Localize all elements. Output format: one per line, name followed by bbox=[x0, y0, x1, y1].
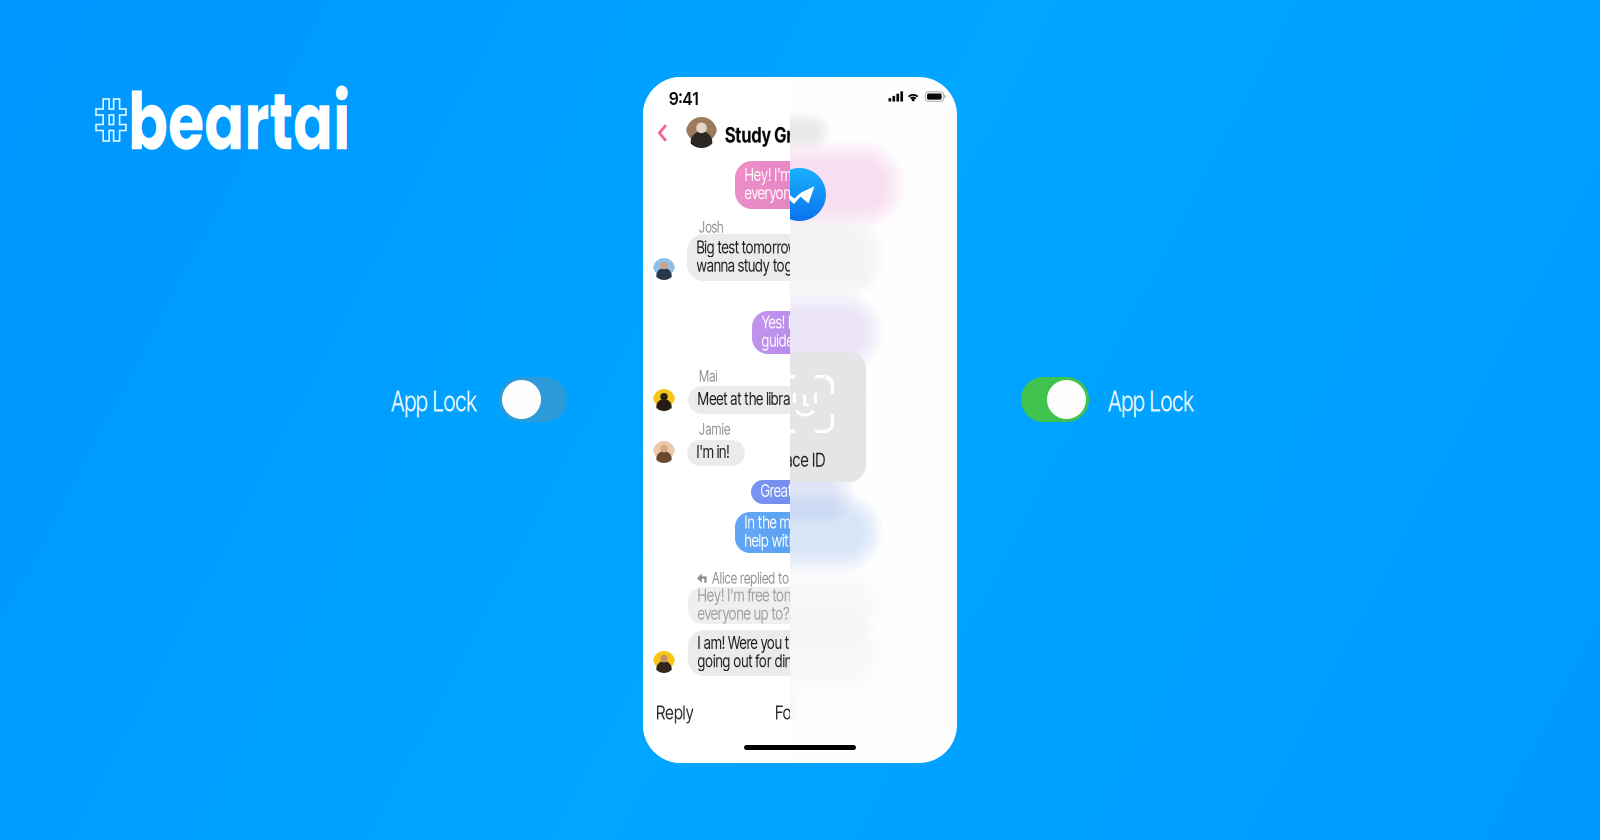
staticText: Alice replied to You bbox=[712, 569, 838, 588]
staticText: everyone up to? bbox=[697, 603, 815, 624]
staticText: Reply bbox=[656, 700, 704, 724]
staticText: I'm in! bbox=[696, 441, 738, 462]
staticText: wanna study together? bbox=[696, 255, 866, 276]
staticText: Josh bbox=[699, 218, 730, 237]
staticText: beartai bbox=[128, 66, 428, 177]
staticText: going out for dinner? bbox=[697, 650, 850, 671]
staticText: Face ID bbox=[777, 448, 839, 471]
staticText: everyone up to? bbox=[744, 182, 862, 203]
staticText: App Lock bbox=[1108, 383, 1226, 418]
button[interactable]: App Lock, off bbox=[499, 377, 567, 422]
staticText: Study Group bbox=[725, 122, 849, 148]
staticText: Hey! I'm free tonight, what's bbox=[697, 585, 900, 606]
staticText: Forward bbox=[775, 700, 845, 724]
staticText: Yes! I have the bbox=[761, 312, 866, 333]
staticText: Meet at the library at 7? bbox=[697, 388, 870, 409]
button[interactable]: App Lock, on bbox=[1021, 377, 1089, 422]
staticText: Big test tomorrow — anyone bbox=[696, 237, 905, 258]
staticText: help with notes? bbox=[744, 530, 863, 551]
staticText: In the morning I can bbox=[744, 512, 889, 533]
staticText: Great! bbox=[760, 480, 804, 501]
staticText: I am! Were you thinking of bbox=[697, 632, 886, 653]
staticText: Jamie bbox=[699, 420, 739, 439]
staticText: 9:41 bbox=[669, 87, 704, 109]
staticText: App Lock bbox=[391, 383, 509, 418]
staticText: guide saved bbox=[761, 330, 850, 351]
staticText: Hey! I'm free tonight, what's bbox=[744, 164, 947, 185]
staticText: Mai bbox=[699, 367, 723, 386]
